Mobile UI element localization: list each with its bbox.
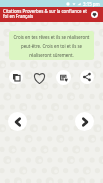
staticText: Citations Proverbes & sur la confiance e…	[3, 8, 87, 19]
button[interactable]: Add to list	[56, 70, 71, 85]
button[interactable]: Previous quote	[8, 112, 27, 131]
button[interactable]: Copy	[9, 70, 23, 84]
button[interactable]: Favourite	[32, 70, 46, 84]
staticText: Crois en tes rêves et ils se réaliseront…	[11, 34, 92, 58]
staticText: 3:15 pm	[83, 1, 100, 7]
button[interactable]: Premium	[91, 11, 98, 18]
button[interactable]: Next quote	[75, 112, 94, 131]
button[interactable]: Crois en tes rêves et ils se réaliseront…	[9, 31, 94, 60]
button[interactable]: Share	[80, 70, 94, 84]
